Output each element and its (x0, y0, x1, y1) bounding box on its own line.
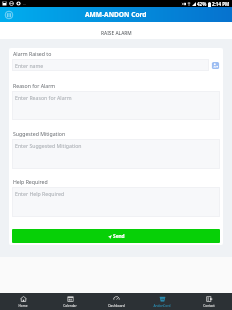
staticText: 2:14 PM (212, 1, 230, 7)
staticText: Enter Reason for Alarm (15, 94, 72, 101)
staticText: RAISE ALARM (101, 30, 132, 37)
button[interactable]: Enter name (12, 59, 209, 71)
button[interactable]: Dashboard (93, 293, 139, 310)
staticText: Alarm Raised to (13, 50, 52, 57)
button[interactable]: Enter Suggested Mitigation (12, 139, 220, 169)
staticText: Enter Suggested Mitigation (15, 142, 82, 149)
staticText: Enter name (15, 62, 44, 69)
staticText: AMM-ANDON Cord (85, 10, 147, 19)
button[interactable]: Enter Help Required (12, 187, 220, 217)
staticText: Help Required (13, 178, 48, 185)
staticText: Reason for Alarm (13, 82, 56, 89)
staticText: Enter Help Required (15, 190, 65, 197)
staticText: ... (23, 1, 27, 6)
staticText: AndonCord (153, 304, 171, 308)
staticText: Home (18, 304, 28, 308)
button[interactable]: AndonCord (139, 293, 185, 310)
button[interactable]: Home (0, 293, 46, 310)
button[interactable]: Contact (186, 293, 232, 310)
button[interactable]: RAISE ALARM (0, 22, 232, 39)
button[interactable]: Send (12, 229, 220, 243)
staticText: Send (113, 233, 125, 240)
button[interactable]: Pick contact (210, 60, 220, 70)
staticText: Contact (203, 304, 215, 308)
button[interactable]: App logo menu (3, 9, 14, 20)
staticText: Calendar (63, 304, 77, 308)
button[interactable]: Enter Reason for Alarm (12, 91, 220, 120)
button[interactable]: Calendar (47, 293, 93, 310)
staticText: Dashboard (108, 304, 125, 308)
staticText: Suggested Mitigation (13, 130, 66, 137)
staticText: 42% (197, 1, 207, 7)
